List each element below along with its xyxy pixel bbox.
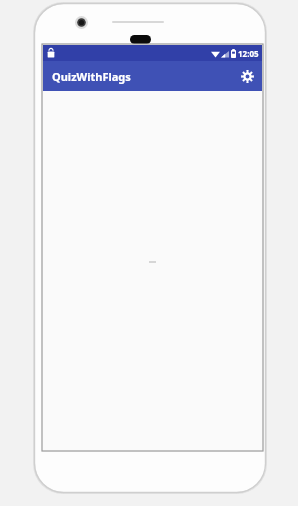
button[interactable]: Settings	[236, 65, 258, 87]
staticText: 12:05	[238, 48, 259, 59]
staticText: QuizWithFlags	[52, 69, 131, 84]
